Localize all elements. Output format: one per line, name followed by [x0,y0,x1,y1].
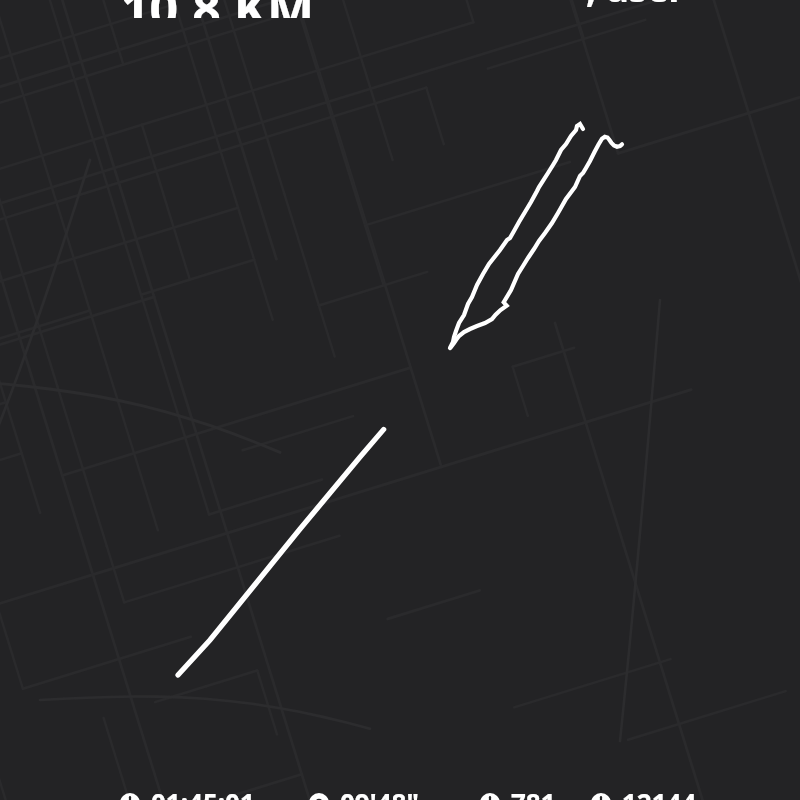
button[interactable]: 09'48" [309,785,419,800]
button[interactable]: 10.8 KM [121,0,315,18]
staticText: 781 [511,785,556,800]
staticText: , user [586,0,685,8]
staticText: 09'48" [340,785,419,800]
button[interactable]: 12144 [591,785,697,800]
staticText: 01:45:01 [151,785,255,800]
button[interactable]: Activity map [0,0,800,800]
button[interactable]: , user [586,0,685,8]
staticText: 12144 [622,785,697,800]
staticText: 10.8 KM [121,0,315,18]
button[interactable]: 781 [480,785,556,800]
button[interactable]: 01:45:01 [120,785,255,800]
